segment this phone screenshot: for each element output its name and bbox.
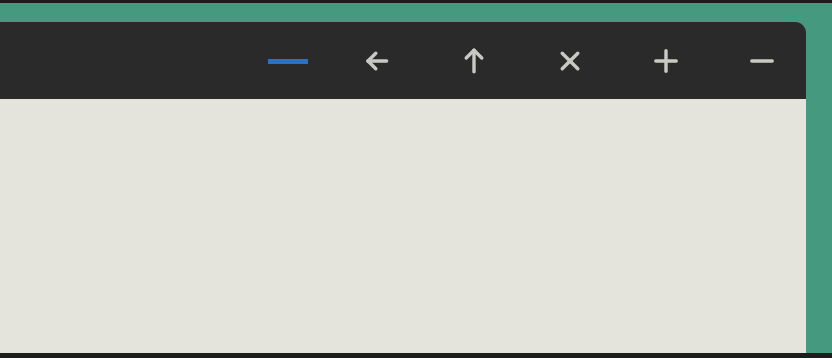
- button[interactable]: Up: [450, 41, 498, 81]
- button[interactable]: Close: [546, 41, 594, 81]
- button[interactable]: Add: [642, 41, 690, 81]
- button[interactable]: Back: [353, 41, 401, 81]
- button[interactable]: Line tool: [264, 41, 312, 81]
- button[interactable]: Remove: [738, 41, 786, 81]
